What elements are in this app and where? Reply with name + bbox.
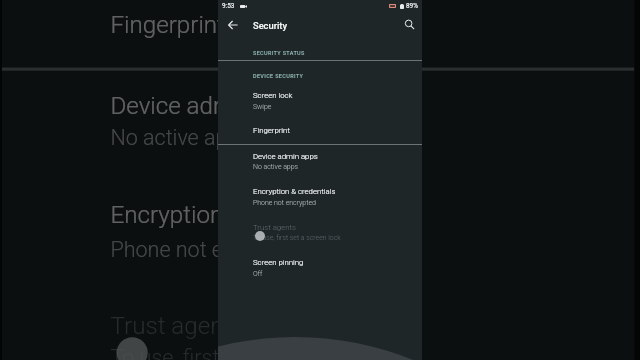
button[interactable]: Encryption & credentials	[218, 180, 422, 215]
button[interactable]: Screen lock	[218, 84, 422, 118]
staticText: Device admin apps	[253, 152, 318, 161]
button[interactable]: Trust agents	[218, 216, 422, 250]
staticText: Encryption & credentials	[253, 187, 336, 196]
button[interactable]: Encryption & credentials	[2, 179, 634, 288]
staticText: Off	[253, 270, 263, 278]
staticText: Fingerprint	[253, 126, 290, 135]
button[interactable]: Navigate up	[223, 15, 243, 35]
button[interactable]: Search	[399, 14, 419, 34]
staticText: Trust agents	[110, 312, 244, 340]
staticText: No active apps	[110, 126, 253, 151]
staticText: Phone not encrypted	[253, 199, 316, 207]
staticText: Swipe	[253, 103, 272, 111]
staticText: Screen lock	[253, 91, 293, 100]
button[interactable]: Fingerprint	[2, 0, 634, 68]
staticText: Phone not encrypted	[110, 238, 306, 263]
staticText: Encryption & credentials	[110, 201, 368, 229]
staticText: Trust agents	[253, 223, 296, 232]
staticText: Fingerprint	[110, 12, 225, 40]
staticText: Device admin apps	[110, 92, 312, 120]
staticText: To use, first set a screen lock	[253, 234, 341, 242]
staticText: SECURITY STATUS	[253, 50, 305, 56]
button[interactable]: Device admin apps	[218, 145, 422, 179]
staticText: To use, first set a screen lock	[110, 347, 383, 360]
button[interactable]: Fingerprint	[218, 118, 422, 144]
staticText: DEVICE SECURITY	[253, 73, 304, 79]
staticText: Screen pinning	[253, 258, 304, 267]
staticText: 9:53	[222, 2, 235, 10]
button[interactable]: Screen pinning	[218, 251, 422, 290]
staticText: Security	[253, 20, 287, 31]
button[interactable]: Device admin apps	[2, 71, 634, 176]
staticText: No active apps	[253, 163, 299, 171]
button[interactable]: Trust agents	[2, 291, 634, 360]
staticText: 89%	[406, 2, 418, 10]
